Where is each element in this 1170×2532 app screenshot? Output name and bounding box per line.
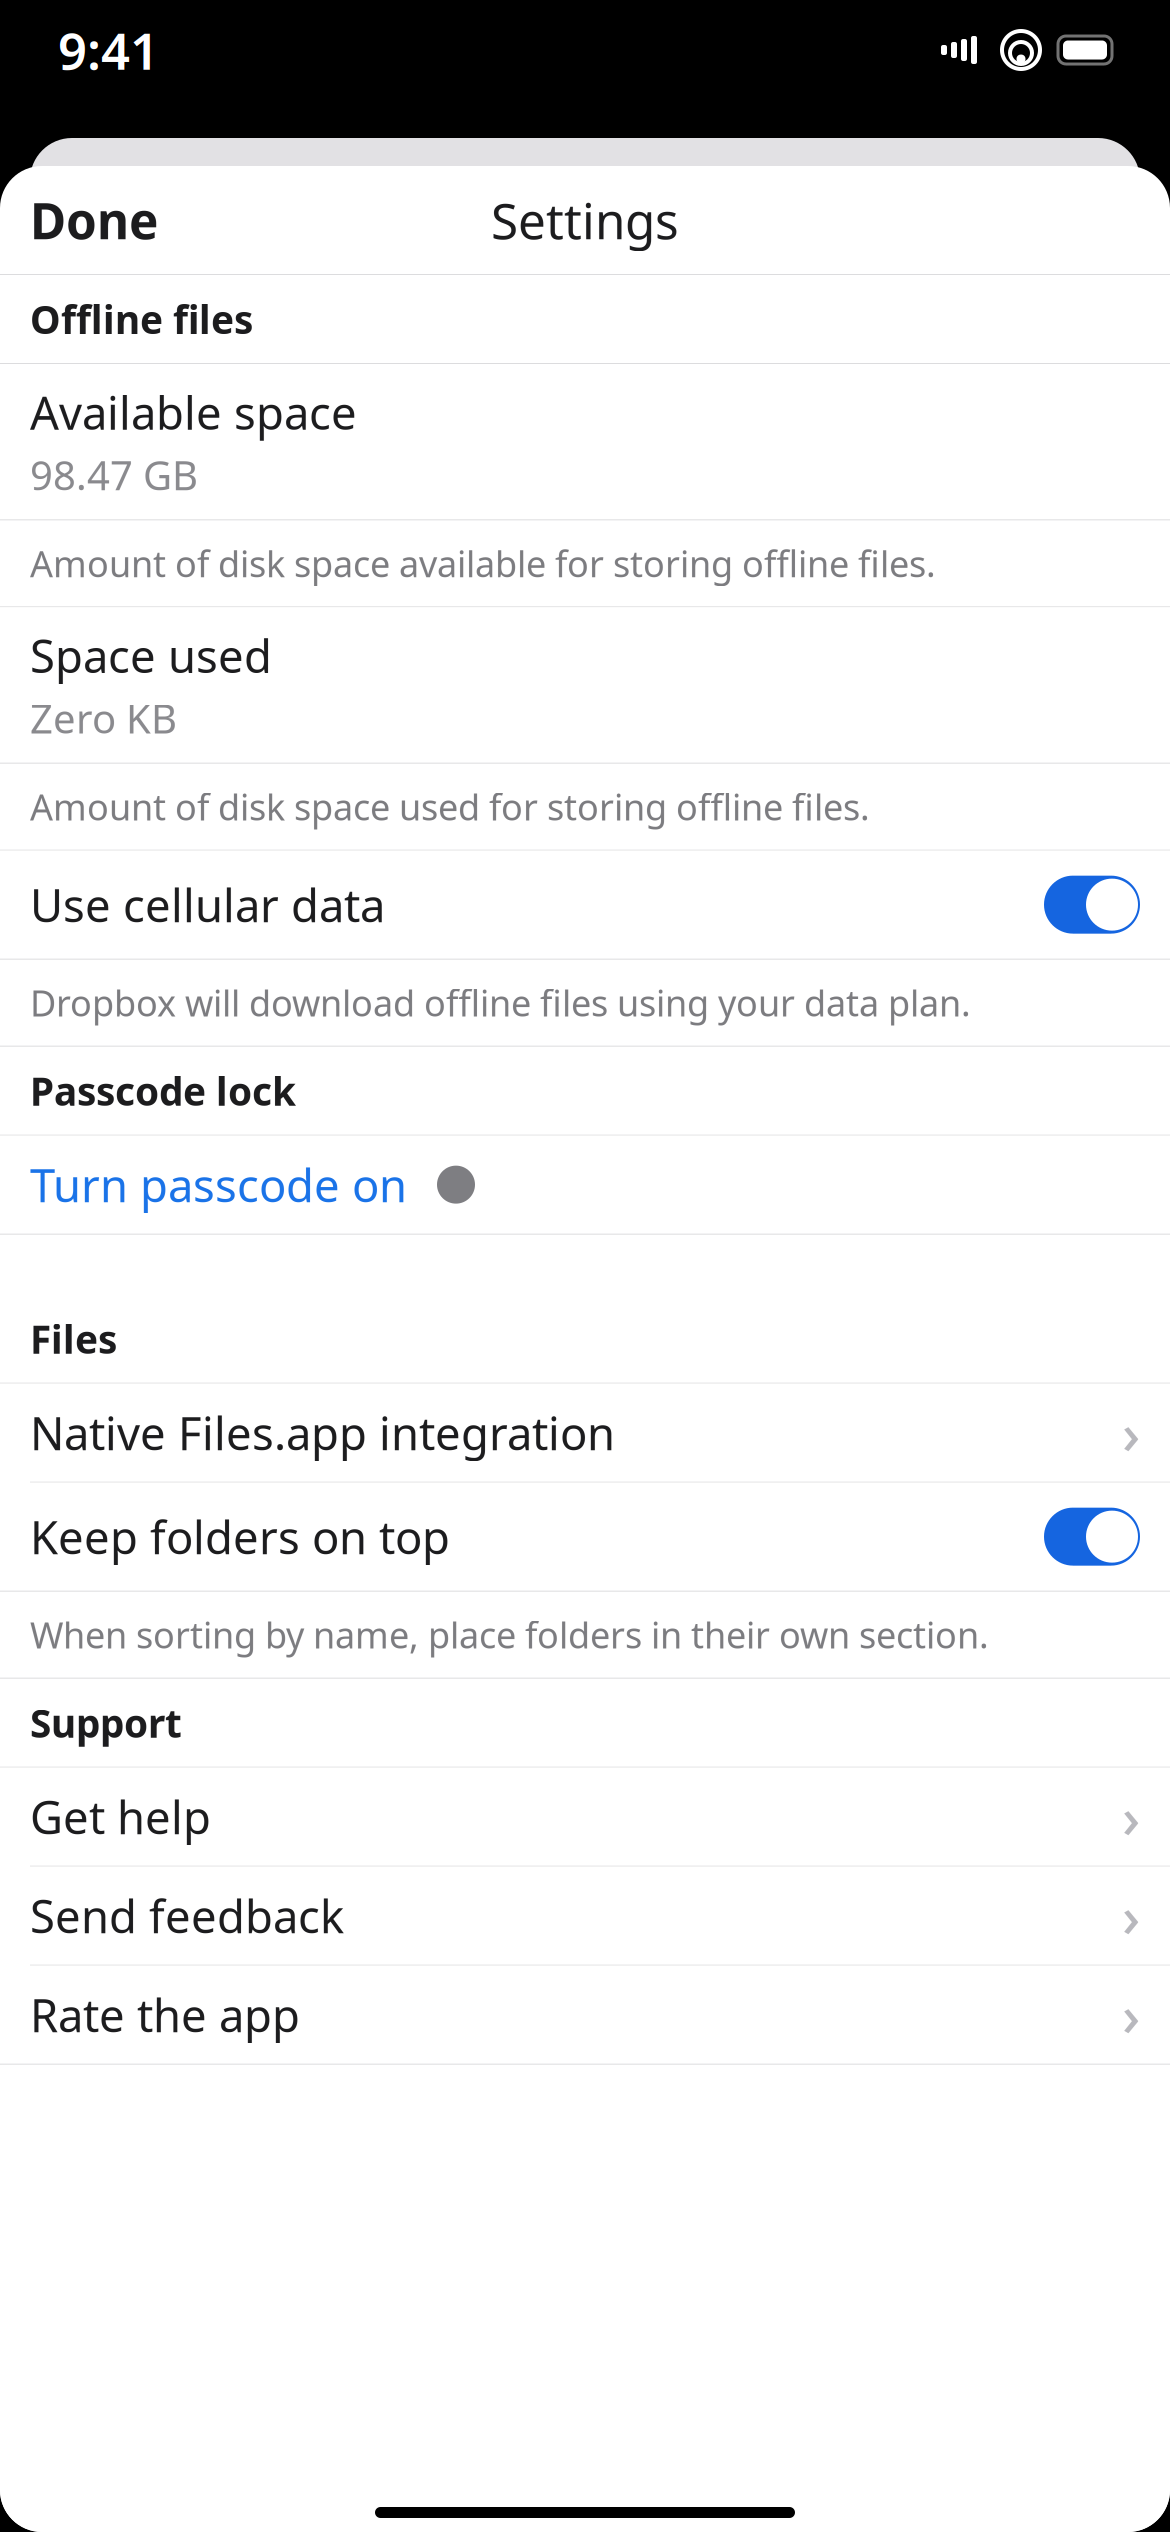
button[interactable]: Keep folders on top — [0, 1483, 1170, 1591]
staticText: › — [1122, 1779, 1140, 1854]
button[interactable]: Turn passcode on — [0, 1136, 1170, 1234]
staticText: Keep folders on top — [30, 1506, 450, 1567]
button[interactable]: Done — [0, 173, 188, 267]
staticText: Dropbox will download offline files usin… — [30, 979, 971, 1026]
staticText: Settings — [491, 187, 679, 253]
staticText: When sorting by name, place folders in t… — [30, 1611, 989, 1658]
staticText: Native Files.app integration — [30, 1402, 615, 1463]
button[interactable]: Get help — [0, 1768, 1170, 1866]
staticText: Amount of disk space used for storing of… — [30, 783, 870, 830]
staticText: Amount of disk space available for stori… — [30, 539, 936, 587]
staticText: 98.47 GB — [30, 448, 198, 501]
staticText: Support — [30, 1697, 182, 1748]
staticText: Offline files — [30, 293, 253, 345]
staticText: Use cellular data — [30, 874, 385, 935]
button[interactable]: Space used — [0, 607, 1170, 763]
button[interactable]: Send feedback — [0, 1867, 1170, 1965]
staticText: Done — [30, 187, 158, 253]
staticText: Get help — [30, 1786, 211, 1847]
button[interactable]: Use cellular data — [0, 851, 1170, 959]
staticText: Available space — [30, 382, 357, 442]
button[interactable]: Rate the app — [0, 1966, 1170, 2064]
staticText: Rate the app — [30, 1984, 300, 2045]
staticText: Zero KB — [30, 691, 177, 745]
button[interactable]: Available space — [0, 364, 1170, 519]
staticText: Files — [30, 1313, 117, 1364]
staticText: Turn passcode on — [30, 1154, 407, 1215]
button[interactable]: Native Files.app integration — [0, 1384, 1170, 1482]
staticText: 9:41 — [58, 16, 159, 84]
staticText: › — [1122, 1878, 1140, 1953]
staticText: Passcode lock — [30, 1065, 296, 1116]
staticText: Space used — [30, 625, 272, 685]
staticText: › — [1122, 1395, 1140, 1470]
staticText: › — [1122, 1977, 1140, 2052]
staticText: Send feedback — [30, 1885, 344, 1946]
